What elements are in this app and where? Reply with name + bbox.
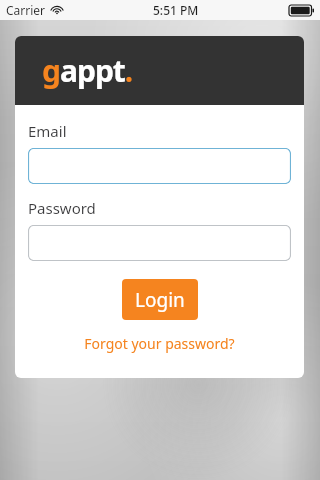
staticText: Email bbox=[28, 121, 67, 141]
button[interactable] bbox=[28, 225, 291, 261]
button[interactable]: Forgot your password? bbox=[76, 332, 243, 355]
button[interactable]: Login bbox=[122, 279, 198, 320]
staticText: Carrier bbox=[6, 2, 46, 18]
staticText: Forgot your password? bbox=[84, 334, 235, 353]
staticText: gappt. bbox=[42, 50, 133, 91]
staticText: Login bbox=[135, 287, 185, 313]
staticText: Password bbox=[28, 198, 96, 218]
staticText: 5:51 PM bbox=[153, 2, 199, 18]
button[interactable] bbox=[28, 148, 291, 184]
